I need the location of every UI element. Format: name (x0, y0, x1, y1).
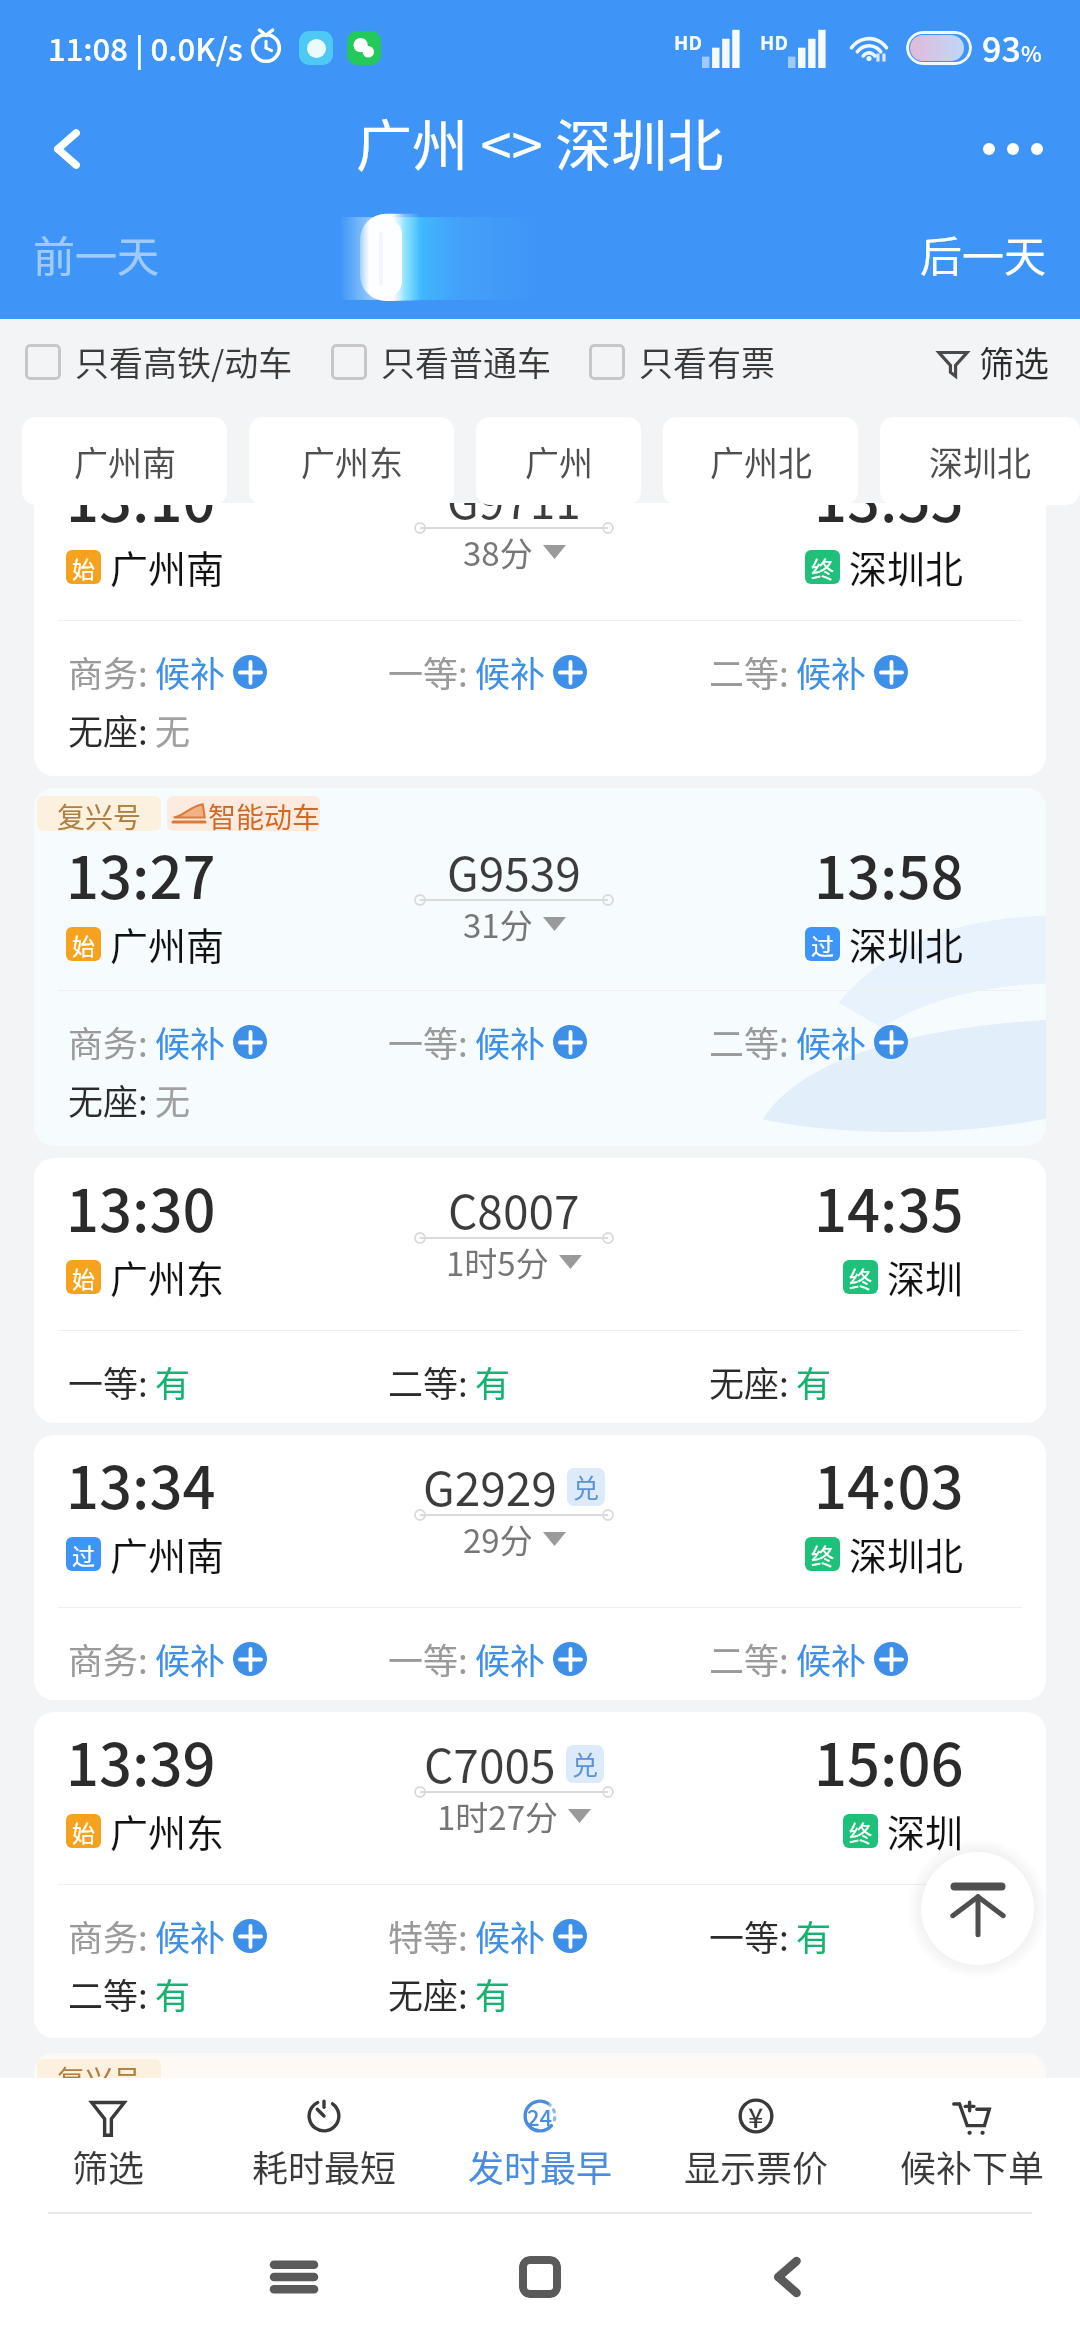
staticText: 1时5分 (446, 1238, 549, 1286)
staticText: G9539 (447, 838, 581, 905)
staticText: 一等: (388, 1016, 468, 1067)
staticText: 深圳北 (849, 1526, 964, 1581)
staticText: 深圳北 (849, 916, 964, 971)
staticText: 显示票价 (684, 2140, 829, 2192)
staticText: 复兴号 (57, 796, 142, 831)
button[interactable]: 广州北 (663, 417, 858, 505)
staticText: 候补下单 (900, 2140, 1045, 2192)
button[interactable]: 13:30 (34, 1158, 1046, 1423)
staticText: 深圳北 (849, 539, 964, 594)
button[interactable]: 候补下单 (864, 2092, 1080, 2202)
button[interactable]: Back (737, 2227, 837, 2327)
staticText: 候补 (796, 646, 867, 697)
staticText: 1时27分 (437, 1792, 558, 1840)
staticText: 无座: (68, 704, 148, 755)
staticText: G2929 (423, 1453, 557, 1520)
staticText: 只看高铁/动车 (75, 337, 293, 386)
staticText: 一等: (68, 1356, 148, 1407)
button[interactable]: 筛选 (937, 336, 1080, 387)
button[interactable]: 13:34 (34, 1435, 1046, 1700)
button[interactable]: 广州南 (22, 417, 227, 505)
staticText: 有 (796, 1356, 832, 1407)
staticText: 后一天 (920, 223, 1047, 284)
staticText: 广州南 (110, 539, 225, 594)
button[interactable]: 只看高铁/动车 (25, 337, 293, 386)
staticText: 终 (811, 1538, 834, 1571)
staticText: 93 (982, 23, 1021, 72)
button[interactable]: 深圳北 (880, 417, 1080, 505)
staticText: 商务: (68, 1633, 148, 1684)
button[interactable]: 24 (432, 2092, 648, 2202)
button[interactable]: 广州 (476, 417, 641, 505)
staticText: 一等: (709, 1910, 789, 1961)
button[interactable]: 只看有票 (589, 337, 775, 386)
staticText: 二等: (709, 646, 789, 697)
staticText: 终 (811, 551, 834, 584)
button[interactable]: Recents (244, 2227, 344, 2327)
staticText: 13:27 (66, 832, 216, 916)
button[interactable]: Home (490, 2227, 590, 2327)
button[interactable]: 广州东 (249, 417, 454, 505)
button[interactable]: 13:10 (34, 503, 1046, 776)
button[interactable]: ¥ (648, 2092, 864, 2202)
staticText: 二等: (68, 1968, 148, 2019)
staticText: 29分 (463, 1515, 533, 1563)
staticText: 深圳 (887, 1249, 964, 1304)
staticText: 广州 <> 深圳北 (356, 101, 724, 182)
button[interactable]: 后一天 (920, 223, 1047, 284)
staticText: 耗时最短 (252, 2140, 397, 2192)
staticText: C8007 (448, 1176, 580, 1243)
button[interactable]: 复兴号 (34, 788, 1046, 1146)
staticText: HD (674, 28, 702, 56)
staticText: 候补 (796, 1016, 867, 1067)
staticText: 广州东 (110, 1249, 225, 1304)
staticText: 始 (72, 551, 95, 584)
staticText: 候补 (155, 1910, 226, 1961)
staticText: HD (760, 28, 788, 56)
staticText: 13:55 (814, 503, 964, 539)
button[interactable]: 耗时最短 (216, 2092, 432, 2202)
staticText: 过 (811, 928, 834, 961)
button[interactable]: 筛选 (0, 2092, 216, 2202)
staticText: 11:08 | 0.0K/s (48, 25, 243, 70)
staticText: 有 (475, 1968, 511, 2019)
staticText: 候补 (475, 1633, 546, 1684)
staticText: 广州南 (74, 437, 176, 486)
staticText: 广州南 (110, 916, 225, 971)
staticText: 深圳北 (929, 437, 1031, 486)
staticText: 商务: (68, 1910, 148, 1961)
button[interactable]: 只看普通车 (331, 337, 551, 386)
staticText: 只看普通车 (381, 337, 551, 386)
staticText: 复兴号 (57, 2059, 142, 2079)
staticText: 13:39 (66, 1719, 216, 1803)
staticText: 候补 (475, 646, 546, 697)
button[interactable]: 前一天 (33, 223, 160, 284)
staticText: 13:34 (66, 1442, 216, 1526)
staticText: 始 (72, 928, 95, 961)
staticText: 无 (155, 1074, 191, 1125)
staticText: 智能动车 (208, 796, 320, 831)
staticText: 有 (796, 1910, 832, 1961)
staticText: 兑 (573, 1468, 600, 1506)
button[interactable]: 13:39 (34, 1712, 1046, 2038)
staticText: 有 (475, 1356, 511, 1407)
staticText: 发时最早 (468, 2140, 613, 2192)
staticText: 候补 (796, 1633, 867, 1684)
staticText: 13:10 (66, 503, 216, 539)
staticText: ¥ (748, 2097, 764, 2136)
staticText: 特等: (388, 1910, 468, 1961)
staticText: 38分 (463, 528, 533, 576)
button[interactable]: Scroll to top (921, 1852, 1034, 1965)
staticText: 候补 (155, 1633, 226, 1684)
staticText: 13:30 (66, 1165, 216, 1249)
staticText: 终 (849, 1261, 872, 1294)
button[interactable]: Back (22, 104, 112, 194)
staticText: 二等: (709, 1016, 789, 1067)
staticText: 二等: (388, 1356, 468, 1407)
staticText: 商务: (68, 1016, 148, 1067)
button[interactable]: More options (968, 104, 1058, 194)
staticText: 二等: (709, 1633, 789, 1684)
staticText: 终 (849, 1815, 872, 1848)
staticText: 一等: (388, 646, 468, 697)
staticText: 无座: (709, 1356, 789, 1407)
